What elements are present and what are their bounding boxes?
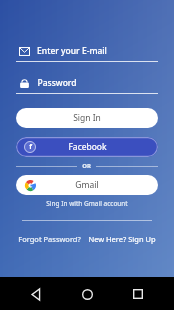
staticText: Facebook bbox=[68, 141, 107, 153]
button[interactable]: Forgot Password? bbox=[16, 232, 83, 246]
staticText: Enter your E-mail bbox=[37, 45, 107, 57]
staticText: Gmail bbox=[75, 179, 99, 191]
button[interactable]: Sign in with Facebook bbox=[16, 137, 158, 157]
button[interactable]: New Here? Sign Up bbox=[86, 232, 158, 246]
button[interactable]: Recents bbox=[123, 279, 153, 309]
staticText: Sing In with Gmail account bbox=[46, 199, 128, 208]
staticText: Password bbox=[37, 77, 77, 89]
button[interactable]: Sign in with Gmail bbox=[16, 175, 158, 195]
staticText: OR bbox=[82, 162, 91, 170]
button[interactable]: Password bbox=[16, 73, 158, 94]
button[interactable]: Back bbox=[21, 279, 51, 309]
staticText: f bbox=[29, 142, 32, 152]
staticText: New Here? Sign Up bbox=[88, 234, 156, 244]
button[interactable]: Home bbox=[72, 279, 102, 309]
staticText: Sign In bbox=[73, 112, 101, 124]
button[interactable]: Sign In bbox=[16, 108, 158, 128]
staticText: Forgot Password? bbox=[18, 234, 81, 244]
button[interactable]: Enter your E-mail bbox=[16, 41, 158, 62]
